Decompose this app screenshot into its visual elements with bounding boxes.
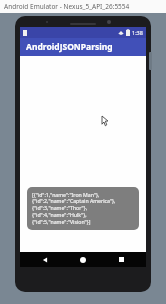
button[interactable]: AndroidJSONParsing: [20, 38, 146, 56]
button[interactable]: Home: [70, 252, 96, 267]
staticText: [{"id":1,"name":"Iron Man"},{"id":2,"nam…: [32, 191, 134, 226]
button[interactable]: [{"id":1,"name":"Iron Man"},{"id":2,"nam…: [27, 187, 139, 230]
button[interactable]: Back: [32, 252, 58, 267]
button[interactable]: Recent apps: [108, 252, 134, 267]
staticText: Android Emulator - Nexus_5_API_26:5554: [4, 2, 130, 11]
staticText: 1:38: [132, 29, 143, 36]
staticText: AndroidJSONParsing: [26, 41, 113, 53]
